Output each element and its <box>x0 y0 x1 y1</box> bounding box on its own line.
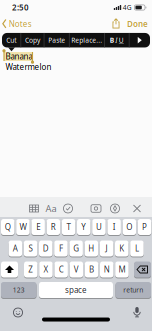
staticText: O <box>126 222 132 232</box>
button[interactable]: K <box>115 240 128 257</box>
button[interactable]: Cut <box>2 33 20 47</box>
staticText: D <box>43 243 49 254</box>
button[interactable]: return <box>115 281 151 298</box>
staticText: Copy <box>25 36 40 45</box>
button[interactable]: S <box>24 240 37 257</box>
staticText: P <box>142 222 147 232</box>
button[interactable]: Share <box>112 18 119 28</box>
staticText: Done <box>127 19 148 29</box>
button[interactable]: W <box>16 218 30 235</box>
staticText: Y <box>81 222 86 232</box>
button[interactable]: Delete <box>134 261 151 278</box>
button[interactable]: M <box>115 261 129 278</box>
button[interactable]: A <box>9 240 22 257</box>
button[interactable]: N <box>100 261 113 278</box>
staticText: H <box>88 243 94 254</box>
button[interactable]: I <box>107 218 121 235</box>
button[interactable]: G <box>69 240 83 257</box>
staticText: Banana <box>5 51 32 62</box>
button[interactable]: T <box>62 218 75 235</box>
staticText: J <box>105 243 107 254</box>
staticText: U <box>96 222 102 232</box>
button[interactable]: U <box>92 218 106 235</box>
button[interactable]: Text formatting <box>45 202 56 215</box>
staticText: Watermelon <box>5 62 51 72</box>
staticText: B <box>89 264 94 275</box>
staticText: V <box>74 264 79 275</box>
button[interactable]: C <box>54 261 68 278</box>
staticText: U <box>119 36 124 45</box>
button[interactable]: Y <box>77 218 90 235</box>
staticText: 2:50 <box>12 2 29 13</box>
staticText: M <box>118 264 125 275</box>
staticText: T <box>66 222 70 232</box>
button[interactable]: F <box>54 240 68 257</box>
button[interactable]: Format <box>105 33 129 47</box>
staticText: Cut <box>6 36 16 45</box>
button[interactable]: Q <box>1 218 14 235</box>
staticText: E <box>36 222 40 232</box>
staticText: Paste <box>48 36 65 45</box>
staticText: W <box>19 222 26 232</box>
button[interactable]: Paste <box>44 33 69 47</box>
staticText: Z <box>28 264 33 275</box>
staticText: return <box>123 286 143 294</box>
staticText: I <box>113 222 116 232</box>
button[interactable]: Dictation <box>132 307 141 317</box>
button[interactable]: P <box>138 218 151 235</box>
button[interactable]: J <box>100 240 113 257</box>
button[interactable]: V <box>70 261 83 278</box>
button[interactable]: More menu items <box>129 33 150 47</box>
staticText: C <box>59 264 64 275</box>
button[interactable]: O <box>123 218 136 235</box>
staticText: L <box>135 243 139 254</box>
button[interactable]: Insert photo <box>91 204 101 212</box>
button[interactable]: H <box>85 240 98 257</box>
button[interactable]: Copy <box>21 33 44 47</box>
button[interactable]: Dismiss toolbar <box>133 205 140 212</box>
staticText: G <box>73 243 79 254</box>
staticText: A <box>13 243 18 254</box>
staticText: S <box>28 243 32 254</box>
button[interactable]: Done <box>127 19 148 29</box>
staticText: Replace... <box>71 36 102 45</box>
staticText: 4G <box>123 3 132 12</box>
staticText: K <box>119 243 124 254</box>
button[interactable]: Shift <box>1 261 18 278</box>
button[interactable]: Insert table <box>29 204 39 212</box>
button[interactable]: Back to Notes <box>2 19 32 29</box>
button[interactable]: 123 <box>1 281 36 298</box>
staticText: Aa <box>45 202 56 215</box>
button[interactable]: Markup <box>110 204 119 213</box>
button[interactable]: D <box>39 240 52 257</box>
staticText: I <box>115 36 117 45</box>
staticText: Notes <box>9 19 32 29</box>
button[interactable]: Replace... <box>70 33 104 47</box>
staticText: Q <box>5 222 11 232</box>
button[interactable]: B <box>85 261 98 278</box>
button[interactable]: Checklist <box>63 204 72 213</box>
button[interactable]: space <box>39 281 113 298</box>
staticText: B <box>110 36 114 45</box>
staticText: X <box>43 264 48 275</box>
staticText: R <box>51 222 56 232</box>
button[interactable]: Emoji <box>13 308 22 317</box>
staticText: F <box>59 243 63 254</box>
button[interactable]: R <box>47 218 60 235</box>
staticText: N <box>104 264 110 275</box>
button[interactable]: Z <box>24 261 37 278</box>
button[interactable]: X <box>39 261 53 278</box>
button[interactable]: E <box>31 218 45 235</box>
button[interactable]: L <box>130 240 144 257</box>
staticText: space <box>65 285 87 295</box>
staticText: 123 <box>13 286 25 294</box>
